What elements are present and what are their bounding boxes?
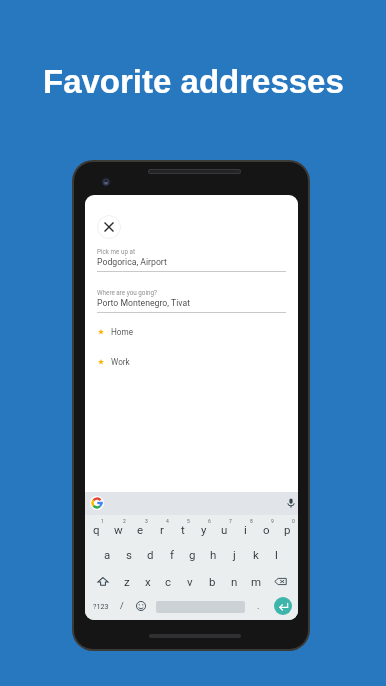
- staticText: a: [104, 548, 111, 561]
- button[interactable]: b: [201, 568, 223, 593]
- staticText: b: [209, 575, 216, 588]
- button[interactable]: j: [224, 539, 245, 564]
- button[interactable]: 1: [85, 514, 107, 539]
- button[interactable]: 8: [235, 514, 256, 539]
- staticText: Work: [111, 357, 130, 367]
- button[interactable]: 9: [256, 514, 277, 539]
- button[interactable]: x: [137, 568, 158, 593]
- button[interactable]: a: [96, 539, 118, 564]
- button[interactable]: g: [182, 539, 203, 564]
- button[interactable]: d: [140, 539, 161, 564]
- staticText: w: [114, 523, 123, 536]
- button[interactable]: Shift: [94, 569, 111, 594]
- button[interactable]: c: [158, 568, 179, 593]
- staticText: Podgorica, Airport: [97, 257, 167, 267]
- button[interactable]: n: [223, 568, 245, 593]
- staticText: r: [160, 523, 164, 536]
- staticText: x: [145, 575, 151, 588]
- staticText: p: [284, 523, 291, 536]
- button[interactable]: v: [179, 568, 201, 593]
- staticText: g: [189, 548, 196, 561]
- staticText: f: [170, 548, 174, 561]
- button[interactable]: Backspace: [271, 569, 289, 594]
- staticText: .: [257, 601, 260, 612]
- button[interactable]: k: [245, 539, 266, 564]
- button[interactable]: Enter: [274, 597, 292, 615]
- staticText: Porto Montenegro, Tivat: [97, 298, 190, 308]
- staticText: 6: [208, 518, 211, 524]
- button[interactable]: l: [266, 539, 287, 564]
- button[interactable]: m: [245, 568, 267, 593]
- staticText: 2: [123, 518, 126, 524]
- button[interactable]: 5: [172, 514, 193, 539]
- staticText: 1: [101, 518, 104, 524]
- staticText: q: [93, 523, 100, 536]
- staticText: e: [137, 523, 144, 536]
- staticText: t: [181, 523, 185, 536]
- staticText: 4: [166, 518, 169, 524]
- button[interactable]: 2: [107, 514, 129, 539]
- button[interactable]: Voice input: [286, 498, 296, 508]
- staticText: 0: [292, 518, 295, 524]
- staticText: z: [124, 575, 130, 588]
- staticText: Pick me up at: [97, 248, 136, 255]
- button[interactable]: s: [118, 539, 140, 564]
- staticText: y: [201, 523, 207, 536]
- button[interactable]: 6: [193, 514, 214, 539]
- staticText: d: [147, 548, 154, 561]
- staticText: o: [263, 523, 270, 536]
- button[interactable]: Where are you going?: [97, 289, 286, 313]
- staticText: Favorite addresses: [43, 63, 344, 100]
- staticText: 8: [250, 518, 253, 524]
- button[interactable]: f: [161, 539, 182, 564]
- staticText: /: [120, 601, 124, 612]
- button[interactable]: h: [203, 539, 224, 564]
- staticText: 3: [145, 518, 148, 524]
- button[interactable]: Close: [97, 215, 121, 239]
- staticText: Where are you going?: [97, 289, 157, 296]
- staticText: u: [221, 523, 228, 536]
- button[interactable]: Work: [85, 351, 298, 373]
- staticText: Home: [111, 327, 134, 337]
- staticText: k: [253, 548, 259, 561]
- staticText: 7: [229, 518, 232, 524]
- button[interactable]: Emoji: [132, 593, 149, 619]
- staticText: 9: [271, 518, 274, 524]
- button[interactable]: .: [250, 593, 266, 619]
- button[interactable]: 3: [129, 514, 151, 539]
- staticText: ?123: [93, 602, 109, 610]
- button[interactable]: 7: [214, 514, 235, 539]
- staticText: s: [126, 548, 132, 561]
- staticText: 5: [187, 518, 190, 524]
- button[interactable]: 0: [277, 514, 298, 539]
- staticText: i: [244, 523, 247, 536]
- staticText: n: [231, 575, 238, 588]
- button[interactable]: Google: [90, 496, 104, 510]
- button[interactable]: ?123: [89, 593, 112, 619]
- staticText: c: [165, 575, 172, 588]
- staticText: h: [210, 548, 217, 561]
- button[interactable]: Pick me up at: [97, 248, 286, 272]
- staticText: m: [251, 575, 262, 588]
- staticText: v: [187, 575, 193, 588]
- button[interactable]: z: [116, 568, 137, 593]
- button[interactable]: Home: [85, 321, 298, 343]
- button[interactable]: 4: [151, 514, 172, 539]
- staticText: l: [275, 548, 278, 561]
- button[interactable]: /: [114, 593, 130, 619]
- staticText: j: [233, 548, 236, 561]
